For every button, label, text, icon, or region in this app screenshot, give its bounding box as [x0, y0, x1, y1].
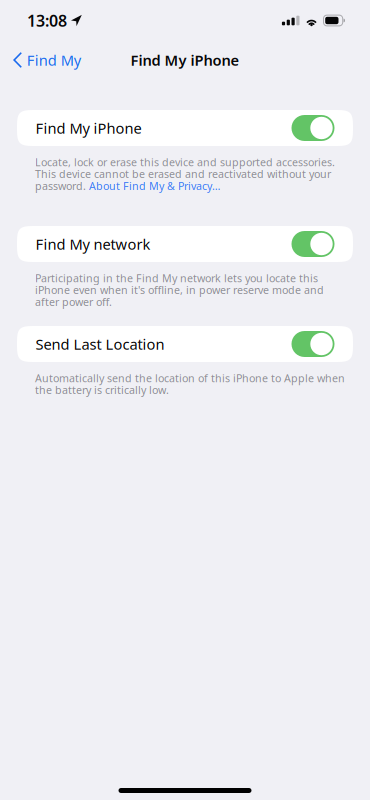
- staticText: iPhone even when it's offline, in power …: [35, 283, 324, 297]
- staticText: after power off.: [35, 295, 112, 309]
- button[interactable]: Find My network: [17, 226, 353, 262]
- staticText: About Find My & Privacy…: [89, 179, 220, 193]
- staticText: Locate, lock or erase this device and su…: [35, 155, 335, 169]
- staticText: Find My iPhone: [130, 50, 239, 70]
- staticText: the battery is critically low.: [35, 383, 169, 397]
- staticText: Participating in the Find My network let…: [35, 271, 318, 285]
- staticText: Find My iPhone: [35, 118, 141, 138]
- staticText: password.: [35, 179, 89, 193]
- staticText: 13:08: [27, 10, 67, 31]
- button[interactable]: Find My iPhone: [17, 110, 353, 146]
- staticText: Send Last Location: [35, 334, 164, 354]
- staticText: Automatically send the location of this …: [35, 371, 345, 385]
- button[interactable]: Find My: [0, 43, 91, 77]
- button[interactable]: Send Last Location: [17, 326, 353, 362]
- button[interactable]: About Find My & Privacy…: [89, 179, 220, 193]
- staticText: This device cannot be erased and reactiv…: [35, 167, 331, 181]
- staticText: Find My: [27, 50, 81, 70]
- staticText: Find My network: [35, 234, 150, 254]
